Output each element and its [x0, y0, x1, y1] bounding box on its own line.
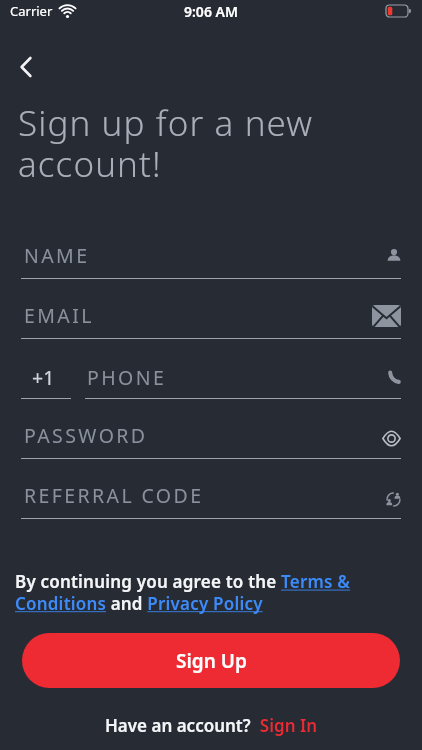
- button[interactable]: +1: [21, 339, 401, 399]
- staticText: 9:06 AM: [184, 2, 238, 21]
- staticText: Sign up for a new account!: [18, 99, 314, 187]
- button[interactable]: PASSWORD: [21, 399, 401, 459]
- button[interactable]: [6, 45, 50, 89]
- staticText: REFERRAL CODE: [24, 482, 204, 509]
- staticText: Have an account?: [105, 714, 251, 737]
- staticText: PHONE: [87, 364, 167, 391]
- staticText: +1: [32, 364, 55, 391]
- staticText: Carrier: [10, 2, 53, 20]
- button[interactable]: By continuing you agree to the Terms & C…: [15, 570, 351, 615]
- staticText: Sign In: [251, 714, 318, 737]
- button[interactable]: NAME: [21, 219, 401, 279]
- button[interactable]: Sign In: [251, 714, 318, 737]
- button[interactable]: EMAIL: [21, 279, 401, 339]
- staticText: PASSWORD: [24, 422, 148, 449]
- staticText: EMAIL: [24, 302, 94, 329]
- staticText: Sign Up: [176, 648, 247, 674]
- button[interactable]: REFERRAL CODE: [21, 459, 401, 519]
- button[interactable]: Sign Up: [22, 633, 400, 688]
- staticText: By continuing you agree to the Terms & C…: [15, 570, 351, 615]
- staticText: NAME: [24, 242, 90, 269]
